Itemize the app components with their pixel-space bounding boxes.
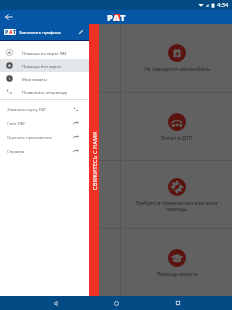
button[interactable]: Back (48, 296, 62, 310)
staticText: Справка (7, 148, 25, 154)
staticText: A (113, 11, 120, 24)
button[interactable] (0, 24, 120, 92)
button[interactable]: Помощь юриста (121, 229, 232, 296)
staticText: Позвонить оператору (22, 89, 68, 95)
staticText: Попал в ДТП (160, 134, 193, 141)
button[interactable]: Попал в ДТП (121, 93, 232, 160)
button[interactable]: СВЯЖИТЕСЬ С НАМИ (89, 24, 99, 296)
staticText: Помощь по карте РАТ (22, 50, 67, 56)
staticText: Оценить приложение (7, 134, 53, 140)
staticText: Заполнить профиль (19, 29, 61, 35)
staticText: A (9, 29, 13, 35)
button[interactable]: Home (109, 296, 123, 310)
button[interactable]: Позвонить оператору (0, 85, 89, 98)
button[interactable] (0, 161, 120, 228)
staticText: Помощь юриста (156, 270, 198, 277)
staticText: Помощь без карты (22, 63, 62, 69)
staticText: P (5, 29, 9, 35)
button[interactable]: Back (2, 10, 16, 24)
button[interactable]: Помощь без карты (0, 59, 89, 72)
staticText: T (120, 11, 126, 24)
staticText: 4:34 (217, 1, 229, 9)
staticText: Требуется техническая или иная помощь (125, 199, 228, 212)
button[interactable]: Recents (171, 296, 185, 310)
button[interactable]: Оценить приложение (0, 130, 89, 144)
staticText: Мои заказы (22, 76, 47, 82)
staticText: Сайт РАТ (7, 120, 26, 126)
button[interactable] (0, 229, 120, 296)
button[interactable]: Мои заказы (0, 72, 89, 85)
button[interactable]: Требуется техническая или иная помощь (121, 161, 232, 228)
button[interactable]: P (0, 24, 89, 40)
staticText: Заказать карту РАТ (7, 106, 47, 112)
button[interactable]: Не заводится автомобиль (121, 24, 232, 92)
button[interactable]: Помощь по карте РАТ (0, 46, 89, 59)
staticText: Не заводится автомобиль (144, 65, 210, 72)
staticText: СВЯЖИТЕСЬ С НАМИ (91, 131, 98, 190)
staticText: P (107, 11, 113, 24)
staticText: T (13, 29, 16, 35)
button[interactable]: Сайт РАТ (0, 116, 89, 130)
other: Edit profile (77, 28, 85, 36)
button[interactable]: Справка (0, 144, 89, 158)
button[interactable]: Заказать карту РАТ (0, 102, 89, 116)
button[interactable] (0, 93, 120, 160)
